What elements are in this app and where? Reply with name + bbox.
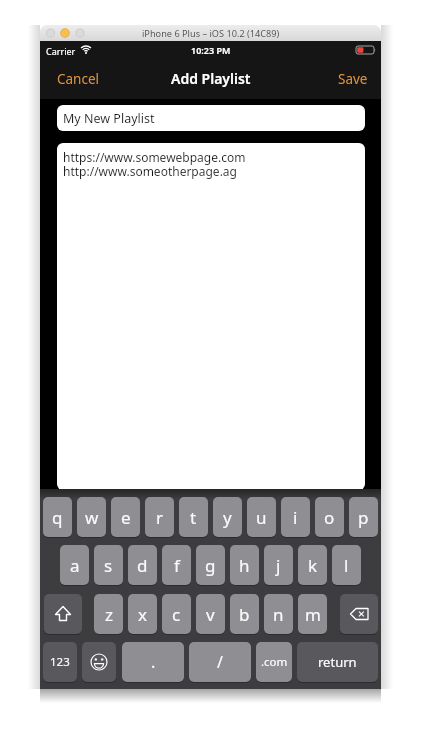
staticText: Save	[338, 70, 368, 88]
button[interactable]	[44, 594, 82, 634]
button[interactable]: y	[213, 497, 242, 537]
staticText: https://www.somewebpage.com http://www.s…	[63, 149, 246, 180]
button[interactable]: c	[162, 594, 191, 634]
staticText: e	[121, 506, 131, 529]
staticText: t	[190, 506, 197, 529]
staticText: l	[344, 554, 349, 577]
button[interactable]: k	[298, 545, 327, 585]
staticText: .	[151, 651, 156, 673]
button[interactable]: o	[315, 497, 344, 537]
staticText: h	[239, 554, 250, 577]
staticText: Add Playlist	[171, 69, 251, 88]
button[interactable]: q	[43, 497, 72, 537]
staticText: .com	[261, 654, 288, 670]
staticText: /	[217, 651, 223, 673]
button[interactable]: a	[60, 545, 89, 585]
button[interactable]: e	[111, 497, 140, 537]
staticText: 10:23 PM	[191, 44, 231, 56]
staticText: a	[70, 554, 80, 577]
staticText: z	[105, 603, 113, 626]
button[interactable]: 123	[43, 642, 77, 682]
button[interactable]: /	[189, 642, 251, 682]
staticText: n	[273, 603, 284, 626]
staticText: g	[205, 554, 216, 577]
button[interactable]: .com	[256, 642, 292, 682]
staticText: b	[239, 603, 250, 626]
button[interactable]: z	[94, 594, 123, 634]
button[interactable]	[82, 642, 116, 682]
staticText: My New Playlist	[63, 110, 155, 127]
button[interactable]: .	[122, 642, 184, 682]
staticText: return	[318, 653, 357, 671]
button[interactable]: p	[349, 497, 378, 537]
button[interactable]: f	[162, 545, 191, 585]
staticText: m	[305, 603, 321, 626]
staticText: 123	[50, 654, 70, 670]
button[interactable]: v	[196, 594, 225, 634]
button[interactable]: m	[298, 594, 327, 634]
staticText: p	[358, 506, 369, 529]
button[interactable]: My New Playlist	[57, 105, 365, 131]
button[interactable]: r	[145, 497, 174, 537]
button[interactable]: https://www.somewebpage.com http://www.s…	[57, 143, 365, 490]
button[interactable]: Cancel	[57, 58, 117, 99]
staticText: q	[52, 506, 63, 529]
staticText: f	[174, 554, 180, 577]
button[interactable]	[340, 594, 378, 634]
staticText: Cancel	[57, 70, 100, 88]
staticText: j	[276, 554, 281, 577]
staticText: iPhone 6 Plus – iOS 10.2 (14C89)	[142, 27, 280, 40]
staticText: w	[85, 506, 99, 529]
button[interactable]: i	[281, 497, 310, 537]
staticText: k	[308, 554, 318, 577]
staticText: y	[223, 506, 232, 529]
button[interactable]: b	[230, 594, 259, 634]
button[interactable]: t	[179, 497, 208, 537]
button[interactable]: l	[332, 545, 361, 585]
button[interactable]: x	[128, 594, 157, 634]
staticText: u	[256, 506, 267, 529]
staticText: s	[104, 554, 113, 577]
button[interactable]: h	[230, 545, 259, 585]
staticText: o	[324, 506, 335, 529]
button[interactable]: j	[264, 545, 293, 585]
button[interactable]: return	[297, 642, 378, 682]
button[interactable]: u	[247, 497, 276, 537]
staticText: Carrier	[46, 45, 76, 57]
button[interactable]: n	[264, 594, 293, 634]
button[interactable]: Save	[308, 58, 368, 99]
button[interactable]: g	[196, 545, 225, 585]
staticText: c	[172, 603, 181, 626]
staticText: v	[206, 603, 215, 626]
staticText: r	[156, 506, 164, 529]
staticText: d	[137, 554, 148, 577]
button[interactable]: s	[94, 545, 123, 585]
button[interactable]: w	[77, 497, 106, 537]
staticText: x	[138, 603, 147, 626]
staticText: i	[293, 506, 298, 529]
button[interactable]: d	[128, 545, 157, 585]
